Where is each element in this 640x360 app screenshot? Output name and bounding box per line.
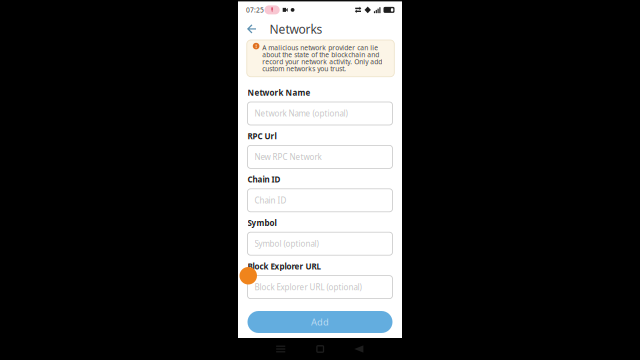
staticText: Chain ID — [254, 195, 286, 206]
button[interactable]: Network Name (optional) — [247, 102, 392, 125]
staticText: Network Name (optional) — [254, 108, 347, 119]
button[interactable]: New RPC Network — [247, 145, 392, 168]
staticText: Symbol — [247, 218, 276, 228]
staticText: Network Name — [247, 87, 310, 98]
staticText: Symbol (optional) — [254, 238, 318, 249]
button[interactable]: Back — [242, 18, 260, 40]
staticText: New RPC Network — [254, 152, 321, 162]
staticText: Block Explorer URL — [247, 261, 320, 272]
button[interactable]: Back — [344, 338, 374, 360]
staticText: Chain ID — [247, 174, 280, 185]
button[interactable]: Chain ID — [247, 189, 392, 212]
staticText: RPC Url — [247, 131, 276, 141]
staticText: A malicious network provider can lie abo… — [262, 43, 382, 73]
staticText: Add — [311, 316, 329, 328]
button[interactable]: Symbol (optional) — [247, 232, 392, 255]
button[interactable]: Home — [305, 338, 335, 360]
staticText: Networks — [269, 21, 322, 37]
button[interactable]: Block Explorer URL (optional) — [247, 276, 392, 299]
button[interactable]: Recent apps — [266, 338, 296, 360]
staticText: 07:25 — [246, 5, 264, 14]
button[interactable]: Add — [247, 311, 392, 333]
staticText: Block Explorer URL (optional) — [254, 282, 361, 292]
